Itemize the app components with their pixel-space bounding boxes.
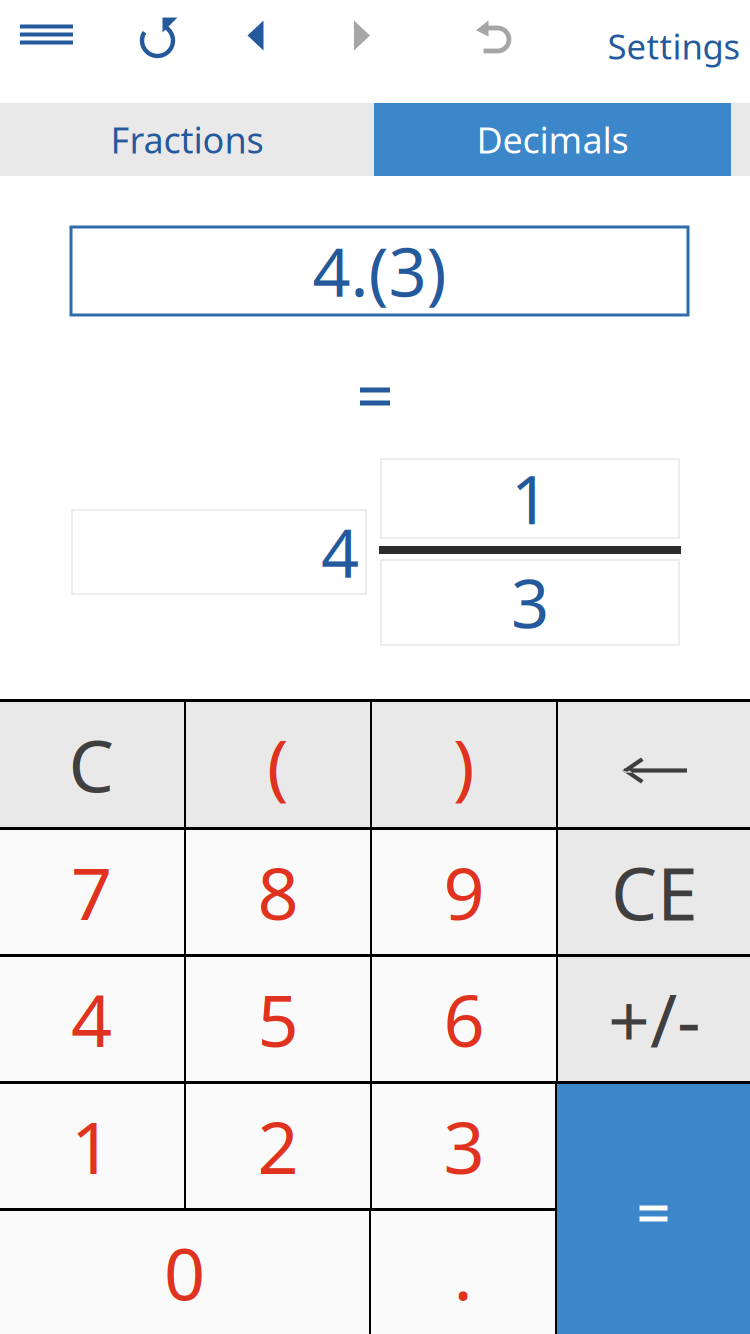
staticText: 2: [257, 1098, 298, 1194]
button[interactable]: +/-: [558, 957, 750, 1081]
staticText: Settings: [607, 23, 740, 69]
button[interactable]: C: [0, 702, 184, 827]
staticText: CE: [611, 843, 698, 941]
staticText: Fractions: [110, 116, 263, 163]
staticText: 4.(3): [312, 227, 446, 315]
button[interactable]: Backspace: [558, 702, 750, 827]
button[interactable]: 7: [0, 830, 184, 954]
staticText: Decimals: [476, 116, 628, 163]
staticText: 1: [71, 1098, 112, 1194]
button[interactable]: ): [372, 702, 556, 827]
staticText: 3: [511, 558, 549, 647]
staticText: C: [68, 717, 114, 812]
staticText: .: [453, 1225, 472, 1320]
button[interactable]: 6: [372, 957, 556, 1081]
button[interactable]: Fractions: [0, 103, 374, 176]
staticText: 3: [443, 1098, 484, 1194]
button[interactable]: 9: [372, 830, 556, 954]
button[interactable]: .: [371, 1211, 555, 1334]
staticText: 5: [257, 971, 298, 1067]
button[interactable]: CE: [558, 830, 750, 954]
button[interactable]: 3: [372, 1084, 556, 1208]
button[interactable]: Equals: [557, 1084, 750, 1334]
staticText: +/-: [608, 970, 701, 1068]
staticText: 4: [71, 971, 112, 1067]
staticText: 9: [443, 844, 484, 940]
button[interactable]: Decimals: [374, 103, 731, 176]
button[interactable]: Reset: [111, 0, 205, 89]
button[interactable]: Undo: [446, 0, 540, 88]
staticText: 4: [321, 508, 359, 596]
staticText: 6: [443, 971, 484, 1067]
button[interactable]: 0: [0, 1211, 369, 1334]
button[interactable]: 8: [186, 830, 370, 954]
button[interactable]: Next: [315, 0, 409, 87]
staticText: 0: [164, 1225, 205, 1320]
button[interactable]: Settings: [579, 0, 750, 97]
button[interactable]: 1: [0, 1084, 184, 1208]
staticText: (: [267, 717, 289, 812]
staticText: 7: [71, 844, 112, 940]
button[interactable]: 5: [186, 957, 370, 1081]
button[interactable]: Previous: [208, 0, 302, 87]
staticText: ): [453, 717, 475, 812]
button[interactable]: 4: [0, 957, 184, 1081]
button[interactable]: Menu: [0, 0, 93, 86]
button[interactable]: 2: [186, 1084, 370, 1208]
staticText: 8: [257, 844, 298, 940]
button[interactable]: (: [186, 702, 370, 827]
staticText: 1: [511, 454, 549, 543]
